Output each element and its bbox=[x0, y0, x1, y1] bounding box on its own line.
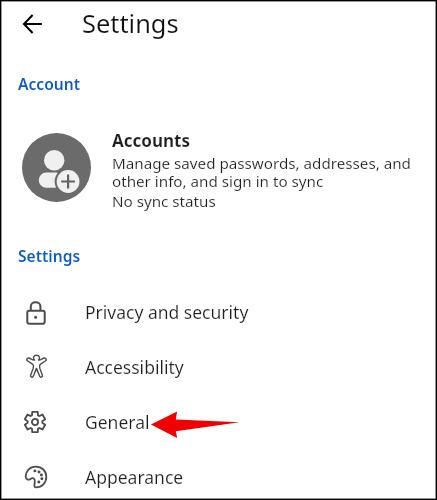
button[interactable]: Privacy and security bbox=[2, 284, 435, 339]
button[interactable]: Accounts bbox=[2, 127, 435, 217]
staticText: Settings bbox=[18, 245, 81, 266]
staticText: Settings bbox=[82, 6, 179, 41]
staticText: Appearance bbox=[85, 465, 184, 489]
staticText: No sync status bbox=[112, 191, 216, 212]
staticText: Manage saved passwords, addresses, and o… bbox=[112, 153, 411, 191]
staticText: Account bbox=[18, 73, 80, 94]
button[interactable]: Appearance bbox=[2, 449, 435, 500]
button[interactable]: Back bbox=[18, 10, 46, 38]
staticText: Privacy and security bbox=[85, 300, 249, 324]
button[interactable]: General bbox=[2, 394, 435, 449]
staticText: Accounts bbox=[112, 129, 190, 152]
staticText: General bbox=[85, 410, 150, 434]
staticText: Accessibility bbox=[85, 355, 184, 379]
button[interactable]: Accessibility bbox=[2, 339, 435, 394]
